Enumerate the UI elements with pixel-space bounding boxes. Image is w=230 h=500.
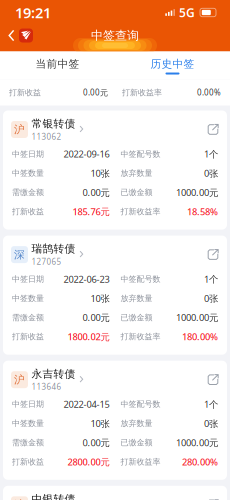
staticText: 常银转债 <box>31 117 75 130</box>
staticText: 中签配号数 <box>120 274 160 284</box>
staticText: 1个 <box>204 148 218 160</box>
staticText: 需缴金额 <box>12 313 44 322</box>
staticText: 打新收益率 <box>120 457 160 467</box>
staticText: 放弃数量 <box>120 168 152 178</box>
staticText: 打新收益率 <box>120 332 160 342</box>
staticText: 中签配号数 <box>120 149 160 159</box>
staticText: 1000.00元 <box>176 311 218 324</box>
staticText: 中签数量 <box>12 293 44 303</box>
staticText: 历史中签 <box>150 57 194 70</box>
staticText: 0.00元 <box>83 87 108 98</box>
staticText: 2800.00元 <box>67 456 109 468</box>
staticText: 打新收益 <box>9 88 41 97</box>
staticText: 中签日期 <box>12 274 44 284</box>
staticText: 0.00% <box>197 87 221 98</box>
staticText: 中银转债 <box>31 492 75 500</box>
staticText: 280.00% <box>182 456 218 468</box>
staticText: 0张 <box>204 417 218 430</box>
staticText: 10张 <box>90 292 109 304</box>
staticText: 中签日期 <box>12 399 44 409</box>
staticText: 18.58% <box>187 205 218 218</box>
button[interactable]: 沪 <box>3 486 227 500</box>
button[interactable]: Back <box>0 25 44 45</box>
staticText: 已缴金额 <box>120 313 152 322</box>
staticText: 0.00元 <box>82 311 109 324</box>
staticText: 中签数量 <box>12 418 44 428</box>
staticText: 2022-06-23 <box>63 273 109 285</box>
staticText: 已缴金额 <box>120 187 152 197</box>
button[interactable]: 深 <box>3 236 227 274</box>
staticText: 185.76元 <box>72 205 109 218</box>
staticText: 19:21 <box>15 3 51 22</box>
staticText: 0.00元 <box>82 436 109 449</box>
staticText: 5G <box>179 4 195 20</box>
staticText: 0.00元 <box>82 186 109 199</box>
staticText: 打新收益 <box>12 332 44 342</box>
staticText: 113646 <box>31 381 61 392</box>
staticText: 中签日期 <box>12 149 44 159</box>
staticText: 打新收益 <box>12 207 44 216</box>
staticText: 放弃数量 <box>120 418 152 428</box>
staticText: 1800.02元 <box>67 330 109 343</box>
staticText: 沪 <box>14 498 25 500</box>
staticText: 打新收益率 <box>120 207 160 216</box>
staticText: 需缴金额 <box>12 438 44 447</box>
staticText: 0张 <box>204 292 218 304</box>
staticText: 2022-09-16 <box>63 148 109 160</box>
button[interactable]: 沪 <box>3 110 227 148</box>
staticText: 已缴金额 <box>120 438 152 447</box>
staticText: 放弃数量 <box>120 293 152 303</box>
staticText: 深 <box>14 248 25 261</box>
staticText: 瑞鹄转债 <box>31 242 75 255</box>
staticText: 1个 <box>204 398 218 410</box>
staticText: 中签配号数 <box>120 399 160 409</box>
staticText: 10张 <box>90 167 109 179</box>
staticText: 当前中签 <box>35 57 79 70</box>
staticText: 打新收益率 <box>122 88 162 97</box>
staticText: 127065 <box>31 256 61 267</box>
staticText: 180.00% <box>182 330 218 343</box>
button[interactable]: 当前中签 <box>0 51 115 79</box>
staticText: 中签数量 <box>12 168 44 178</box>
staticText: 113062 <box>31 131 61 142</box>
staticText: 中签查询 <box>91 28 139 43</box>
staticText: 沪 <box>14 373 25 386</box>
staticText: 1000.00元 <box>176 436 218 449</box>
staticText: 2022-04-15 <box>63 398 109 410</box>
button[interactable]: 沪 <box>3 361 227 399</box>
staticText: 打新收益 <box>12 457 44 467</box>
staticText: 1个 <box>204 273 218 285</box>
staticText: 1000.00元 <box>176 186 218 199</box>
staticText: 永吉转债 <box>31 367 75 380</box>
staticText: 沪 <box>14 123 25 136</box>
button[interactable]: 历史中签 <box>115 51 230 79</box>
staticText: 10张 <box>90 417 109 430</box>
staticText: 0张 <box>204 167 218 179</box>
staticText: 需缴金额 <box>12 187 44 197</box>
